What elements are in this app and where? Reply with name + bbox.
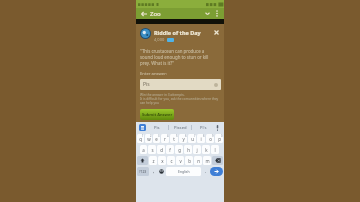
button[interactable]: y bbox=[179, 134, 187, 143]
button[interactable]: Enter bbox=[210, 167, 223, 176]
button[interactable]: i bbox=[197, 134, 205, 143]
button[interactable]: More options bbox=[212, 9, 221, 18]
button[interactable]: Submit Answer bbox=[140, 109, 174, 120]
staticText: Submit Answer bbox=[142, 112, 173, 117]
staticText: g bbox=[178, 147, 181, 153]
button[interactable]: Space bbox=[166, 167, 201, 176]
button[interactable]: w bbox=[145, 134, 152, 143]
staticText: ?123 bbox=[139, 169, 147, 174]
staticText: c bbox=[170, 158, 173, 164]
staticText: r bbox=[164, 136, 166, 142]
staticText: z bbox=[152, 158, 155, 164]
button[interactable]: l bbox=[211, 145, 219, 154]
staticText: h bbox=[187, 147, 190, 153]
button[interactable]: Comma bbox=[150, 167, 157, 176]
button[interactable]: Pi's bbox=[192, 122, 214, 133]
staticText: 7 bbox=[194, 134, 196, 138]
button[interactable]: Close bbox=[212, 28, 221, 37]
button[interactable]: k bbox=[202, 145, 210, 154]
staticText: w bbox=[147, 136, 151, 142]
button[interactable]: m bbox=[203, 156, 211, 165]
staticText: e bbox=[155, 136, 158, 142]
staticText: f bbox=[169, 147, 171, 153]
staticText: Pis bbox=[143, 81, 150, 88]
staticText: "This crustacean can produce a sound lou… bbox=[140, 48, 215, 66]
staticText: 4,000 bbox=[154, 37, 165, 42]
staticText: t bbox=[173, 136, 175, 142]
staticText: English bbox=[178, 169, 190, 174]
button[interactable]: x bbox=[158, 156, 166, 165]
staticText: 6 bbox=[185, 134, 187, 138]
staticText: 5 bbox=[176, 134, 178, 138]
button[interactable]: Zoo bbox=[150, 10, 203, 18]
staticText: x bbox=[161, 158, 164, 164]
button[interactable]: s bbox=[148, 145, 156, 154]
button[interactable]: b bbox=[185, 156, 193, 165]
staticText: k bbox=[205, 147, 208, 153]
staticText: 9 bbox=[212, 134, 214, 138]
button[interactable]: q bbox=[137, 134, 144, 143]
staticText: o bbox=[209, 136, 212, 142]
staticText: i bbox=[200, 136, 202, 142]
staticText: d bbox=[160, 147, 163, 153]
button[interactable]: ?123 bbox=[137, 167, 149, 176]
button[interactable]: Pissed bbox=[169, 122, 191, 133]
staticText: Zoo bbox=[150, 10, 161, 18]
staticText: 8 bbox=[203, 134, 205, 138]
staticText: m bbox=[205, 158, 210, 164]
button[interactable]: Back bbox=[139, 9, 148, 18]
staticText: 1 bbox=[142, 134, 144, 138]
button[interactable]: a bbox=[140, 145, 147, 154]
button[interactable]: u bbox=[188, 134, 196, 143]
staticText: Pis bbox=[154, 125, 160, 131]
button[interactable]: r bbox=[161, 134, 169, 143]
button[interactable]: g bbox=[175, 145, 183, 154]
staticText: y bbox=[182, 136, 185, 142]
button[interactable]: c bbox=[167, 156, 175, 165]
staticText: j bbox=[196, 147, 198, 153]
button[interactable]: o bbox=[206, 134, 214, 143]
staticText: n bbox=[197, 158, 200, 164]
staticText: Win the answer in 3 attempts. It is diff… bbox=[140, 93, 221, 105]
button[interactable]: z bbox=[149, 156, 157, 165]
button[interactable]: d bbox=[157, 145, 165, 154]
staticText: Pi's bbox=[200, 125, 207, 131]
staticText: Pissed bbox=[174, 125, 187, 131]
button[interactable]: Expand bbox=[203, 9, 212, 18]
button[interactable]: Emoji bbox=[158, 167, 165, 176]
button[interactable]: j bbox=[193, 145, 201, 154]
staticText: , bbox=[153, 168, 155, 175]
staticText: s bbox=[151, 147, 154, 153]
button[interactable]: h bbox=[184, 145, 192, 154]
button[interactable]: Pis bbox=[146, 122, 168, 133]
button[interactable]: p bbox=[215, 134, 223, 143]
button[interactable]: t bbox=[170, 134, 178, 143]
button[interactable]: e bbox=[153, 134, 160, 143]
staticText: . bbox=[205, 168, 207, 175]
button[interactable]: Shift bbox=[137, 156, 148, 165]
staticText: Riddle of the Day bbox=[154, 29, 201, 36]
staticText: 4 bbox=[167, 134, 169, 138]
staticText: 3 bbox=[158, 134, 160, 138]
staticText: a bbox=[142, 147, 145, 153]
staticText: 2 bbox=[150, 134, 152, 138]
button[interactable]: f bbox=[166, 145, 174, 154]
staticText: Enter answer: bbox=[140, 71, 168, 77]
staticText: 0 bbox=[221, 134, 223, 138]
button[interactable]: Delete bbox=[212, 156, 223, 165]
button[interactable]: Keyboard settings bbox=[139, 124, 146, 131]
button[interactable]: v bbox=[176, 156, 184, 165]
button[interactable]: Period bbox=[202, 167, 209, 176]
staticText: l bbox=[214, 147, 216, 153]
staticText: b bbox=[188, 158, 191, 164]
staticText: v bbox=[179, 158, 182, 164]
staticText: p bbox=[218, 136, 221, 142]
button[interactable]: n bbox=[194, 156, 202, 165]
button[interactable]: Voice input bbox=[214, 124, 221, 131]
staticText: u bbox=[191, 136, 194, 142]
button[interactable]: Pis bbox=[140, 79, 221, 90]
staticText: q bbox=[139, 136, 142, 142]
